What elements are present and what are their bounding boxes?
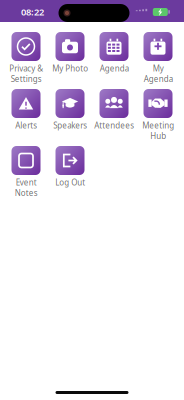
staticText: Event Notes <box>14 177 37 198</box>
button[interactable]: Speakers <box>50 89 90 140</box>
staticText: Attendees <box>94 120 134 131</box>
staticText: My Photo <box>52 63 88 74</box>
button[interactable]: My Photo <box>50 32 90 83</box>
button[interactable]: Meeting Hub <box>138 89 178 140</box>
staticText: Agenda <box>99 63 128 74</box>
staticText: Privacy & Settings <box>9 63 43 84</box>
button[interactable]: My Agenda <box>138 32 178 83</box>
button[interactable]: Event Notes <box>6 146 46 197</box>
button[interactable]: Log Out <box>50 146 90 197</box>
button[interactable]: Alerts <box>6 89 46 140</box>
button[interactable]: Agenda <box>94 32 134 83</box>
button[interactable]: Attendees <box>94 89 134 140</box>
staticText: My Agenda <box>143 63 172 84</box>
button[interactable]: Privacy & Settings <box>6 32 46 83</box>
staticText: Speakers <box>53 120 87 131</box>
staticText: Meeting Hub <box>142 120 174 141</box>
staticText: Log Out <box>55 177 85 188</box>
staticText: 08:22 <box>21 6 44 18</box>
staticText: Alerts <box>15 120 37 131</box>
